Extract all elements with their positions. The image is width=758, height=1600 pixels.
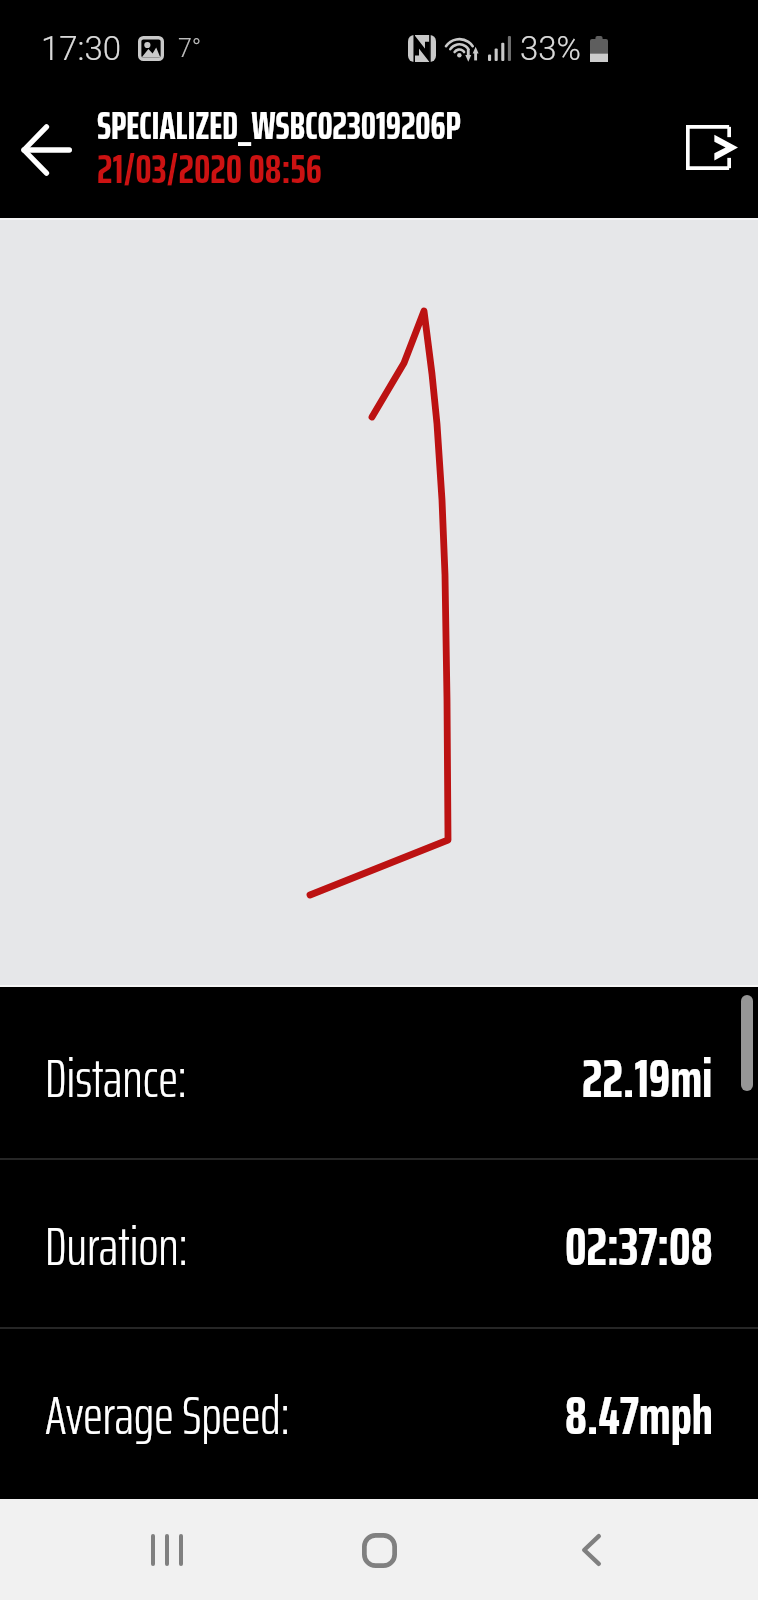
staticText: Duration: bbox=[45, 1205, 188, 1288]
button[interactable]: Distance: bbox=[0, 994, 758, 1162]
staticText: 7° bbox=[178, 34, 202, 63]
button[interactable]: Average Speed: bbox=[0, 1331, 758, 1499]
button[interactable]: Back bbox=[543, 1502, 639, 1598]
button[interactable]: Home bbox=[331, 1502, 427, 1598]
staticText: Average Speed: bbox=[45, 1374, 290, 1457]
staticText: Distance: bbox=[45, 1037, 187, 1120]
button[interactable]: Export track bbox=[679, 114, 745, 180]
staticText: 33% bbox=[520, 29, 582, 68]
button[interactable]: Recent apps bbox=[119, 1502, 215, 1598]
staticText: 21/03/2020 08:56 bbox=[97, 136, 322, 201]
button[interactable]: Navigate up bbox=[4, 108, 88, 192]
button[interactable]: Duration: bbox=[0, 1162, 758, 1330]
staticText: 22.19mi bbox=[582, 1036, 713, 1121]
staticText: SPECIALIZED_WSBC023019206P bbox=[97, 96, 461, 156]
staticText: 17:30 bbox=[41, 29, 122, 68]
staticText: 8.47mph bbox=[565, 1373, 713, 1458]
staticText: 02:37:08 bbox=[565, 1204, 713, 1289]
